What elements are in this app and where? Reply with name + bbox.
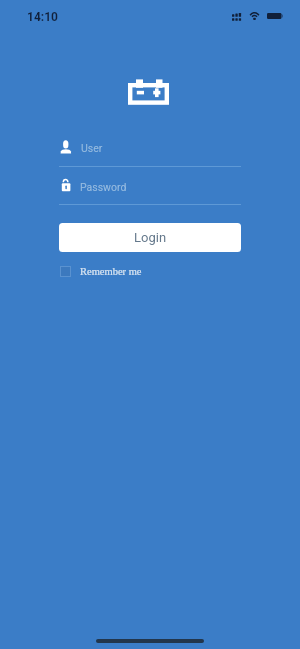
other: Cellular signal <box>232 13 241 21</box>
staticText: Remember me <box>80 266 142 278</box>
button[interactable]: Password <box>59 177 241 205</box>
staticText: Login <box>134 230 167 245</box>
button[interactable]: Remember me <box>60 265 142 278</box>
other: Wi-Fi <box>249 12 260 20</box>
button[interactable]: User <box>59 139 241 167</box>
other: Battery <box>267 13 283 19</box>
staticText: Password <box>80 181 127 193</box>
staticText: User <box>81 142 103 154</box>
other: Battery logo <box>128 79 169 105</box>
staticText: 14:10 <box>27 10 58 24</box>
button[interactable]: Login <box>59 223 241 252</box>
